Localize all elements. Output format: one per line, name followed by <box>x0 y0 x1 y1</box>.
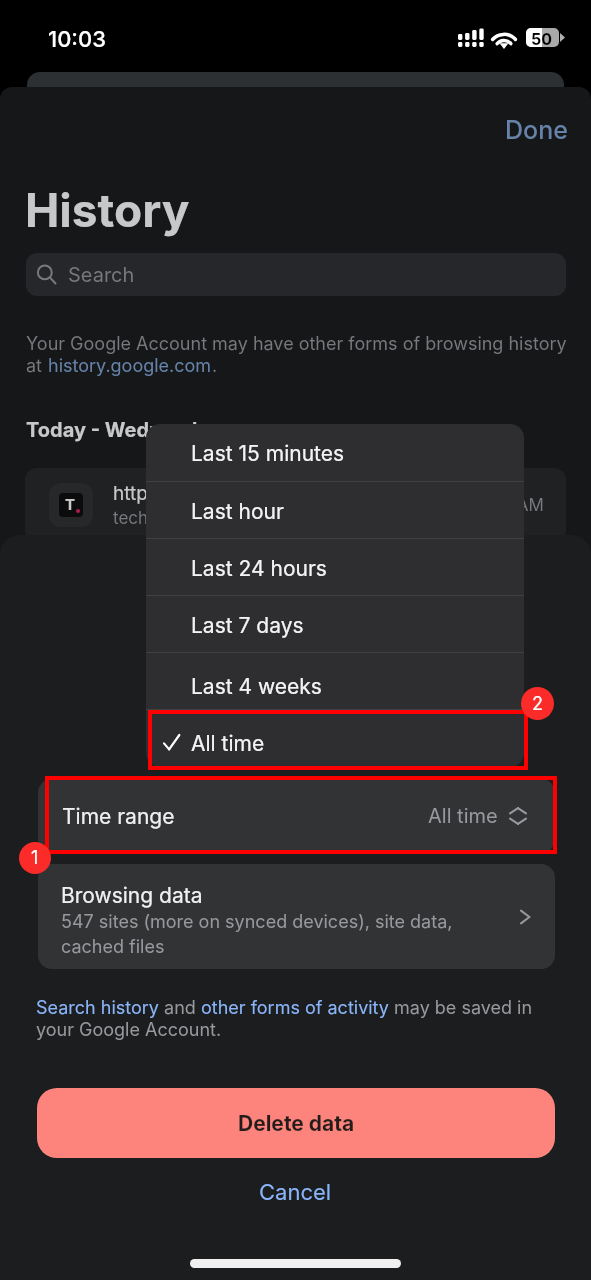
button[interactable]: Cancel <box>243 1171 348 1214</box>
button[interactable]: Last 7 days <box>146 596 524 652</box>
staticText: 9:41 AM <box>479 495 544 516</box>
staticText: 10:03 <box>48 26 106 53</box>
button[interactable]: Last 24 hours <box>146 539 524 595</box>
button[interactable]: Search history <box>36 997 159 1019</box>
staticText: at <box>26 355 48 377</box>
staticText: 547 sites (more on synced devices), site… <box>61 911 453 957</box>
staticText: T <box>65 495 76 513</box>
staticText: and <box>159 997 201 1019</box>
staticText: 1 <box>31 847 39 869</box>
staticText: Cancel <box>259 1179 332 1206</box>
button[interactable]: Last hour <box>146 482 524 538</box>
staticText: Your Google Account may have other forms… <box>26 333 567 355</box>
staticText: All time <box>191 731 265 756</box>
button[interactable]: All time <box>146 710 524 766</box>
staticText: techcrunch.com <box>113 508 244 529</box>
staticText: Search <box>68 263 135 287</box>
button[interactable]: history.google.com <box>48 355 212 377</box>
button[interactable]: Search <box>26 253 566 296</box>
staticText: 2 <box>532 693 543 715</box>
button[interactable]: Done <box>495 107 578 153</box>
button[interactable]: other forms of activity <box>201 997 389 1019</box>
staticText: Last 4 weeks <box>191 674 322 699</box>
staticText: Last 24 hours <box>191 556 327 581</box>
button[interactable]: Last 4 weeks <box>146 653 524 709</box>
staticText: Time range <box>62 804 175 829</box>
staticText: Done <box>505 115 568 145</box>
staticText: Last 7 days <box>191 613 304 638</box>
staticText: History <box>25 182 190 238</box>
staticText: Last hour <box>191 499 284 524</box>
staticText: All time <box>428 804 498 828</box>
staticText: Today - Wednesday <box>26 418 221 442</box>
staticText: Last 15 minutes <box>191 441 345 466</box>
button[interactable]: T <box>25 468 566 542</box>
staticText: 50 <box>531 29 553 48</box>
staticText: your Google Account. <box>36 1019 222 1041</box>
button[interactable]: Browsing data <box>38 864 555 969</box>
staticText: may be saved in <box>389 997 533 1019</box>
staticText: . <box>212 355 218 377</box>
staticText: Delete data <box>238 1111 355 1136</box>
staticText: Browsing data <box>61 883 203 908</box>
button[interactable]: Last 15 minutes <box>146 424 524 481</box>
staticText: https://techcrunch.com <box>113 482 324 505</box>
button[interactable]: Time range <box>38 779 555 853</box>
button[interactable]: Delete data <box>37 1088 555 1158</box>
